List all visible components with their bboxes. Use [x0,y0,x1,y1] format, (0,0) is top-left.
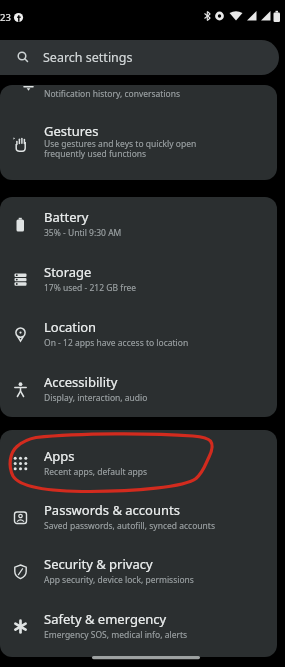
staticText: Saved passwords, autofill, synced accoun… [44,520,215,532]
button[interactable]: Location [0,307,277,362]
button[interactable]: Battery [0,197,277,252]
button[interactable]: Apps [0,436,277,491]
staticText: Battery [44,208,89,226]
button[interactable]: Gestures [0,115,277,180]
staticText: Recent apps, default apps [44,466,148,478]
staticText: Gestures [44,122,99,140]
staticText: Safety & emergency [44,610,167,628]
staticText: On - 12 apps have access to location [44,337,189,349]
button[interactable]: Security & privacy [0,544,277,599]
staticText: 35% - Until 9:30 AM [44,227,122,239]
staticText: Emergency SOS, medical info, alerts [44,629,188,641]
staticText: 17% used - 212 GB free [44,282,137,294]
staticText: Location [44,318,97,336]
button[interactable]: Storage [0,252,277,307]
staticText: App security, device lock, permissions [44,574,194,586]
staticText: Passwords & accounts [44,501,180,519]
staticText: Display, interaction, audio [44,392,148,404]
staticText: Notification history, conversations [44,88,181,100]
staticText: Security & privacy [44,555,153,573]
staticText: Use gestures and keys to quickly open fr… [44,138,197,159]
staticText: Apps [44,447,75,465]
button[interactable]: Accessibility [0,362,277,417]
button[interactable]: Safety & emergency [0,599,277,654]
staticText: Search settings [43,49,133,66]
button[interactable]: Passwords & accounts [0,490,277,545]
button[interactable]: Search settings [0,40,279,75]
staticText: 23 [0,11,11,24]
staticText: Storage [44,263,92,281]
staticText: Accessibility [44,373,118,391]
